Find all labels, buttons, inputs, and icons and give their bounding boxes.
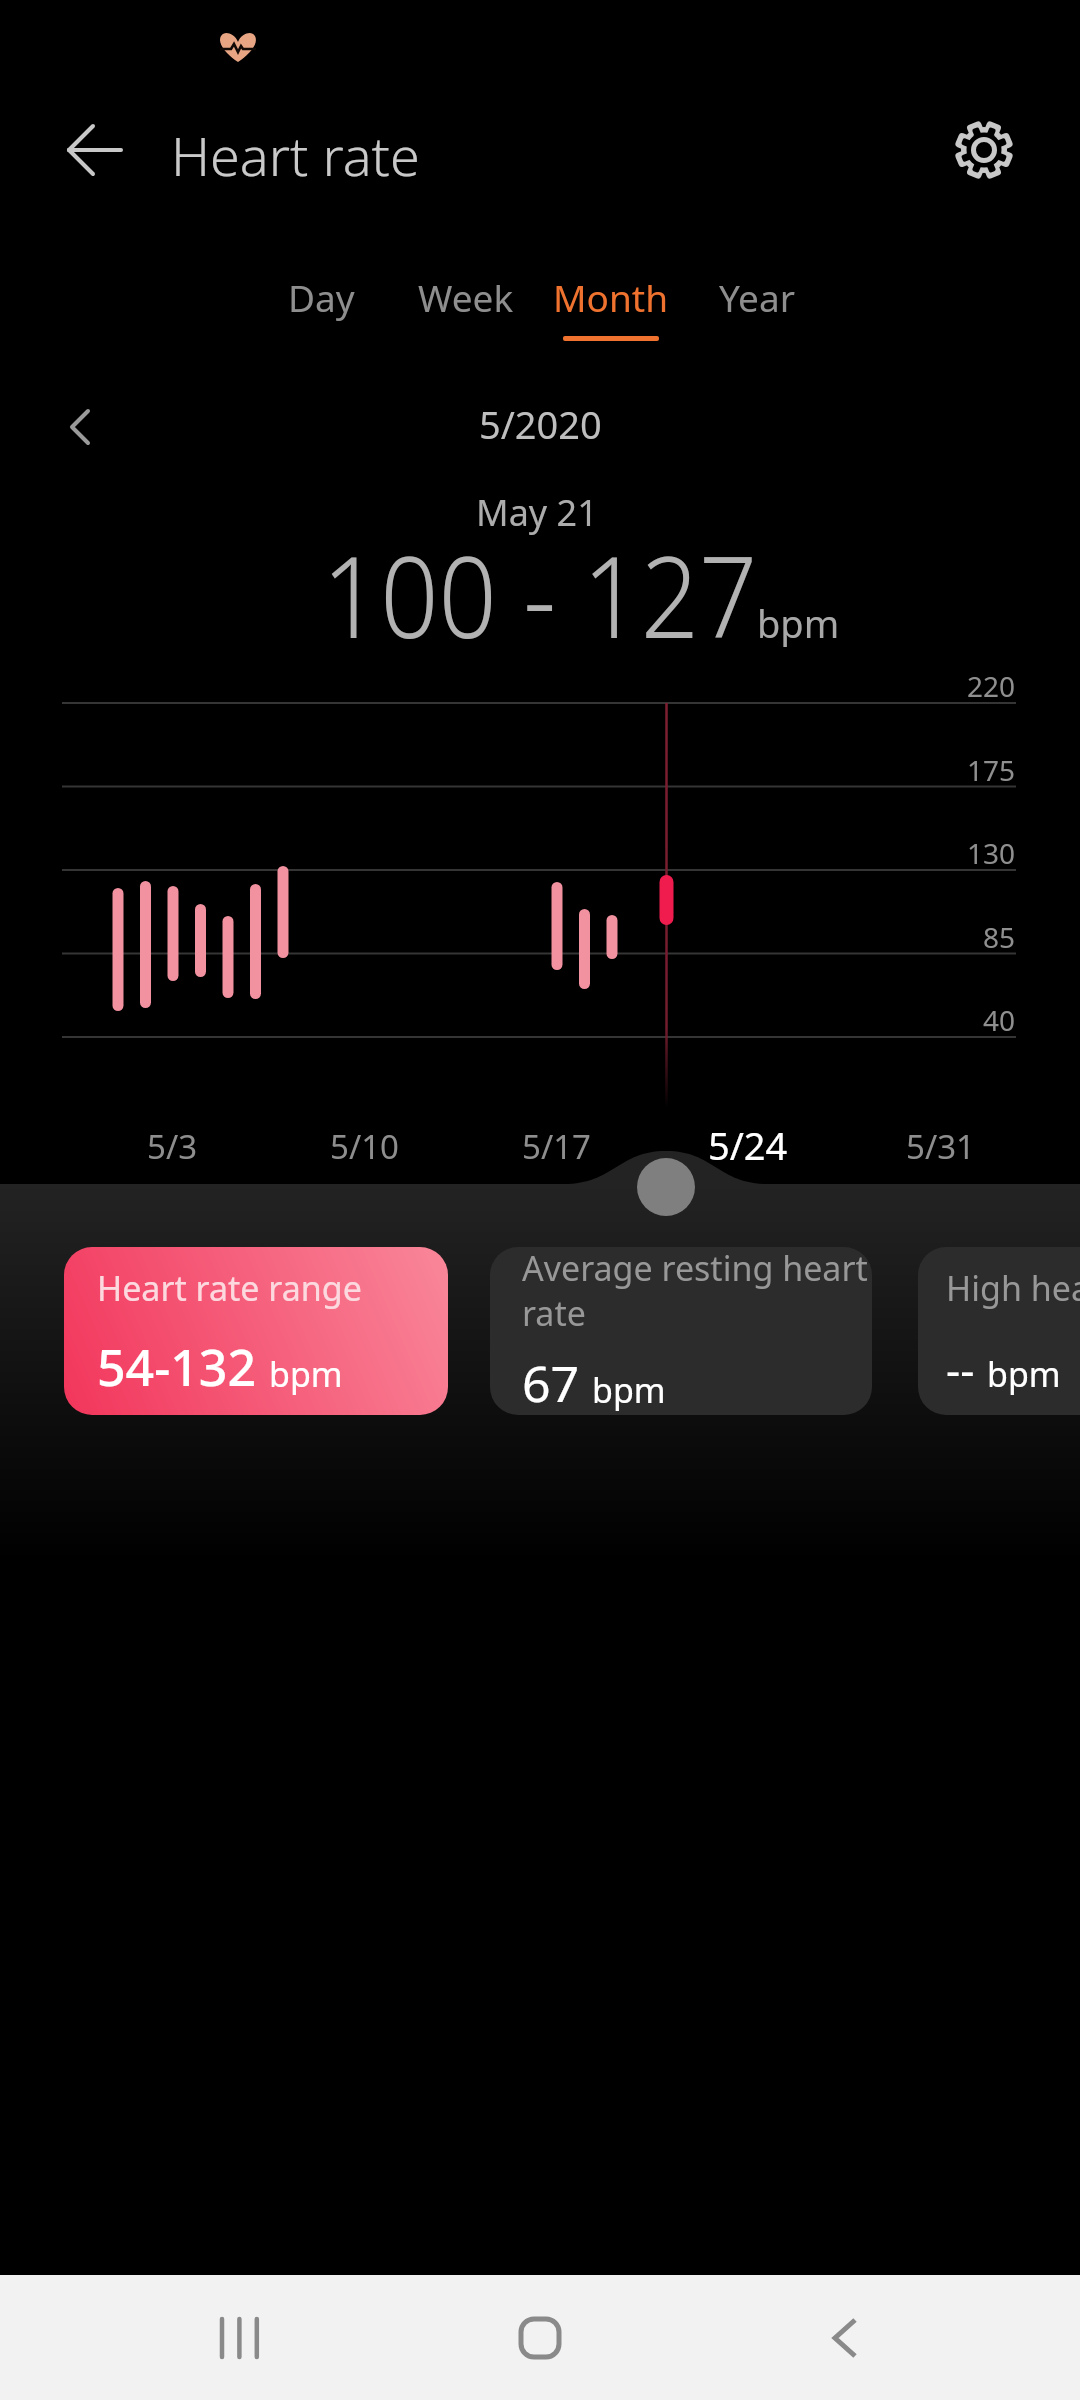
staticText: Week xyxy=(418,272,514,322)
button[interactable]: High heart rate xyxy=(918,1247,1080,1415)
staticText: bpm xyxy=(987,1351,1061,1397)
staticText: May 21 xyxy=(476,488,598,537)
button[interactable]: Month xyxy=(538,262,684,332)
button[interactable] xyxy=(55,110,135,190)
staticText: 130 xyxy=(967,834,1016,868)
staticText: 40 xyxy=(983,1001,1016,1035)
staticText: 5/17 xyxy=(522,1124,591,1168)
button[interactable]: Week xyxy=(393,262,539,332)
button[interactable] xyxy=(630,1151,702,1223)
staticText: -- xyxy=(946,1339,975,1399)
staticText: 5/10 xyxy=(330,1124,399,1168)
staticText: Year xyxy=(719,272,795,322)
staticText: Heart rate range xyxy=(97,1265,362,1311)
staticText: 175 xyxy=(967,751,1016,785)
staticText: Average resting heart rate xyxy=(522,1247,868,1335)
staticText: 100 - 127 xyxy=(322,518,758,642)
staticText: 67 xyxy=(522,1349,580,1415)
staticText: Day xyxy=(288,272,355,322)
button[interactable]: Heart rate range xyxy=(64,1247,448,1415)
staticText: Heart rate xyxy=(171,118,420,192)
button[interactable] xyxy=(495,2293,585,2383)
staticText: 85 xyxy=(983,918,1016,952)
staticText: 5/2020 xyxy=(479,398,602,450)
staticText: 5/31 xyxy=(906,1124,975,1168)
button[interactable]: Day xyxy=(248,262,394,332)
staticText: 54-132 xyxy=(97,1333,257,1401)
staticText: bpm xyxy=(592,1367,666,1413)
button[interactable] xyxy=(195,2293,285,2383)
button[interactable]: Average resting heart rate xyxy=(490,1247,872,1415)
staticText: 5/24 xyxy=(708,1119,788,1167)
button[interactable] xyxy=(944,110,1024,190)
button[interactable]: Year xyxy=(684,262,830,332)
staticText: High heart rate xyxy=(946,1265,1080,1311)
button[interactable] xyxy=(58,405,102,449)
staticText: 220 xyxy=(967,667,1016,701)
staticText: 5/3 xyxy=(147,1124,198,1168)
button[interactable] xyxy=(800,2293,890,2383)
staticText: bpm xyxy=(269,1351,343,1397)
staticText: bpm xyxy=(757,597,840,649)
staticText: Month xyxy=(553,272,669,322)
